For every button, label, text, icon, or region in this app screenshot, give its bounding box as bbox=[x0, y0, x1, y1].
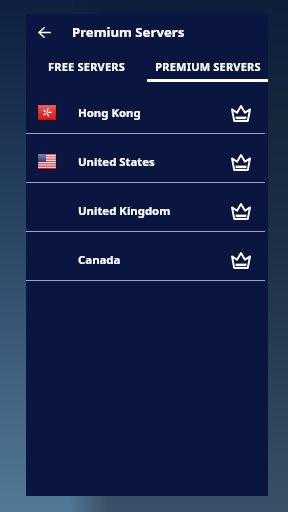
button[interactable]: Premium bbox=[229, 101, 253, 125]
button[interactable]: United States bbox=[26, 138, 268, 187]
button[interactable]: PREMIUM SERVERS bbox=[147, 53, 268, 83]
staticText: United Kingdom bbox=[78, 203, 171, 219]
button[interactable]: Premium bbox=[229, 150, 253, 174]
staticText: PREMIUM SERVERS bbox=[155, 59, 261, 74]
staticText: FREE SERVERS bbox=[48, 59, 125, 74]
staticText: Premium Servers bbox=[72, 23, 185, 41]
button[interactable]: Premium bbox=[229, 248, 253, 272]
button[interactable]: United Kingdom bbox=[26, 187, 268, 236]
staticText: Canada bbox=[78, 252, 121, 268]
staticText: Hong Kong bbox=[78, 105, 141, 121]
staticText: United States bbox=[78, 154, 155, 170]
button[interactable]: Back bbox=[31, 19, 57, 45]
button[interactable]: FREE SERVERS bbox=[26, 53, 147, 83]
button[interactable]: Hong Kong bbox=[26, 89, 268, 138]
button[interactable]: Premium bbox=[229, 199, 253, 223]
button[interactable]: Canada bbox=[26, 236, 268, 285]
